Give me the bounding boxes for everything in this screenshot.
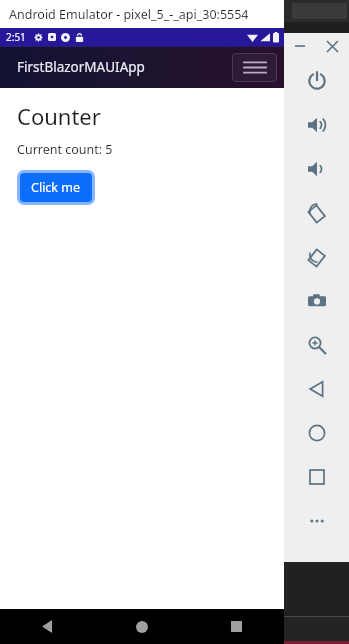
button[interactable]: Minimize: [284, 33, 316, 59]
button[interactable]: Zoom: [284, 323, 349, 367]
staticText: FirstBlazorMAUIApp: [17, 58, 145, 76]
button[interactable]: More: [284, 499, 349, 543]
staticText: Current count: 5: [17, 141, 113, 158]
button[interactable]: Home: [284, 411, 349, 455]
button[interactable]: Toggle navigation: [232, 53, 277, 82]
button[interactable]: Volume down: [284, 147, 349, 191]
button[interactable]: Close: [316, 33, 349, 59]
button[interactable]: Back: [284, 367, 349, 411]
button[interactable]: Screenshot: [284, 279, 349, 323]
staticText: 2:51: [6, 30, 26, 44]
button[interactable]: Overview: [284, 455, 349, 499]
button[interactable]: Home: [94, 609, 189, 644]
staticText: Counter: [17, 101, 101, 131]
button[interactable]: Rotate left: [284, 191, 349, 235]
button[interactable]: Power: [284, 59, 349, 103]
staticText: Click me: [31, 179, 81, 196]
staticText: Android Emulator - pixel_5_-_api_30:5554: [9, 6, 249, 23]
button[interactable]: Recents: [189, 609, 284, 644]
button[interactable]: Click me: [20, 173, 92, 202]
button[interactable]: Volume up: [284, 103, 349, 147]
button[interactable]: Rotate right: [284, 235, 349, 279]
button[interactable]: Back: [0, 609, 94, 644]
